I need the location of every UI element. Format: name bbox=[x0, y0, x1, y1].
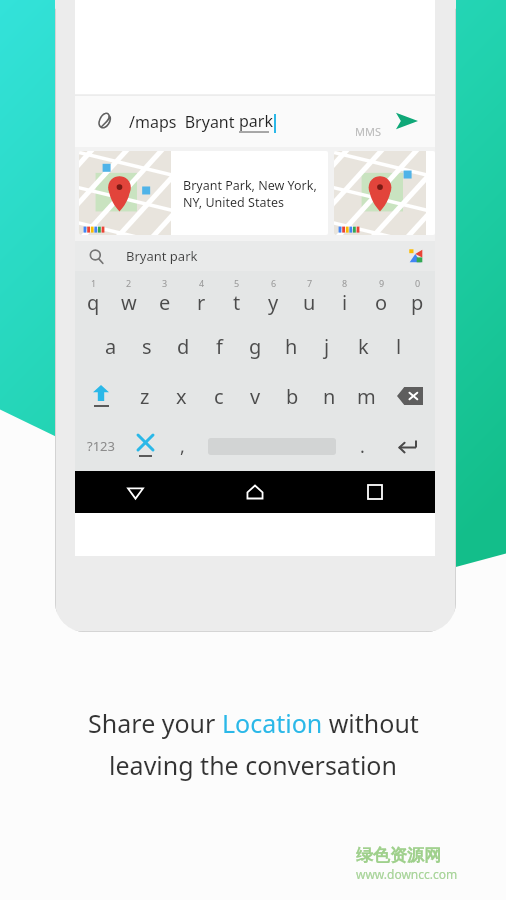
button[interactable]: 2 bbox=[111, 271, 147, 321]
button[interactable]: 7 bbox=[291, 271, 327, 321]
staticText: 7 bbox=[307, 277, 313, 289]
staticText: e bbox=[159, 289, 171, 316]
staticText: g bbox=[249, 333, 262, 360]
button[interactable]: Space bbox=[199, 421, 345, 471]
staticText: , bbox=[180, 434, 185, 459]
button[interactable]: g bbox=[237, 321, 273, 371]
button[interactable]: h bbox=[273, 321, 309, 371]
staticText: a bbox=[105, 333, 117, 360]
staticText: l bbox=[396, 333, 402, 360]
button[interactable]: Backspace bbox=[385, 371, 435, 421]
staticText: 0 bbox=[415, 277, 421, 289]
button[interactable]: . bbox=[345, 421, 379, 471]
staticText: o bbox=[375, 289, 388, 316]
staticText: t bbox=[233, 289, 241, 316]
staticText: j bbox=[324, 333, 330, 360]
button[interactable]: m bbox=[348, 371, 385, 421]
staticText: d bbox=[177, 333, 190, 360]
staticText: /maps Bryant bbox=[129, 111, 239, 133]
staticText: 8 bbox=[342, 277, 348, 289]
staticText: r bbox=[197, 289, 206, 316]
staticText: n bbox=[323, 383, 336, 410]
staticText: i bbox=[342, 289, 348, 316]
button[interactable]: b bbox=[274, 371, 311, 421]
button[interactable]: k bbox=[345, 321, 381, 371]
button[interactable]: 1 bbox=[75, 271, 111, 321]
button[interactable]: Bryant park bbox=[75, 241, 435, 271]
staticText: 绿色资源网 bbox=[356, 845, 441, 866]
button[interactable]: z bbox=[126, 371, 163, 421]
staticText: 1 bbox=[91, 277, 97, 289]
staticText: c bbox=[214, 383, 224, 410]
staticText: . bbox=[360, 434, 365, 459]
button[interactable]: 9 bbox=[363, 271, 399, 321]
button[interactable]: Bryant Park, New York, NY, United States bbox=[79, 151, 328, 235]
staticText: z bbox=[140, 383, 150, 410]
staticText: x bbox=[176, 383, 187, 410]
staticText: ?123 bbox=[87, 437, 115, 455]
staticText: u bbox=[303, 289, 316, 316]
button[interactable]: ?123 bbox=[75, 421, 126, 471]
staticText: y bbox=[268, 289, 279, 316]
staticText: Bryant park bbox=[126, 247, 198, 265]
button[interactable]: j bbox=[309, 321, 345, 371]
button[interactable]: Close keyboard bbox=[126, 421, 165, 471]
staticText: w bbox=[121, 289, 137, 316]
staticText: s bbox=[142, 333, 152, 360]
button[interactable]: c bbox=[200, 371, 237, 421]
button[interactable]: 6 bbox=[255, 271, 291, 321]
button[interactable]: Attach bbox=[89, 106, 119, 136]
button[interactable]: v bbox=[237, 371, 274, 421]
button[interactable]: Bryant Park 40th… Unit… bbox=[334, 151, 435, 235]
staticText: MMS bbox=[355, 124, 381, 139]
staticText: b bbox=[286, 383, 299, 410]
button[interactable]: Back bbox=[75, 471, 195, 513]
button[interactable]: Recents bbox=[315, 471, 435, 513]
staticText: 3 bbox=[162, 277, 168, 289]
staticText: 6 bbox=[271, 277, 277, 289]
staticText: f bbox=[216, 333, 223, 360]
staticText: Bryant Park, New York, NY, United States bbox=[183, 177, 317, 210]
button[interactable]: d bbox=[165, 321, 201, 371]
button[interactable]: l bbox=[381, 321, 417, 371]
staticText: leaving the conversation bbox=[109, 748, 397, 782]
staticText: www.downcc.com bbox=[356, 866, 458, 882]
button[interactable]: x bbox=[163, 371, 200, 421]
staticText: v bbox=[250, 383, 261, 410]
staticText: 4 bbox=[199, 277, 205, 289]
staticText: park bbox=[239, 110, 273, 132]
button[interactable]: n bbox=[311, 371, 348, 421]
button[interactable]: 4 bbox=[183, 271, 219, 321]
button[interactable]: s bbox=[129, 321, 165, 371]
button[interactable]: 8 bbox=[327, 271, 363, 321]
staticText: h bbox=[285, 333, 298, 360]
staticText: 9 bbox=[379, 277, 385, 289]
button[interactable]: , bbox=[165, 421, 199, 471]
staticText: q bbox=[87, 289, 100, 316]
staticText: p bbox=[411, 289, 424, 316]
staticText: 5 bbox=[234, 277, 240, 289]
button[interactable]: Enter bbox=[379, 421, 435, 471]
button[interactable]: Shift bbox=[75, 371, 126, 421]
button[interactable]: a bbox=[93, 321, 129, 371]
staticText: m bbox=[357, 383, 376, 410]
button[interactable]: 5 bbox=[219, 271, 255, 321]
button[interactable]: Send bbox=[391, 105, 423, 137]
staticText: Share your Location without bbox=[88, 706, 419, 740]
staticText: k bbox=[358, 333, 369, 360]
button[interactable]: 0 bbox=[399, 271, 435, 321]
button[interactable]: 3 bbox=[147, 271, 183, 321]
button[interactable]: Home bbox=[195, 471, 315, 513]
button[interactable]: f bbox=[201, 321, 237, 371]
staticText: 2 bbox=[126, 277, 132, 289]
